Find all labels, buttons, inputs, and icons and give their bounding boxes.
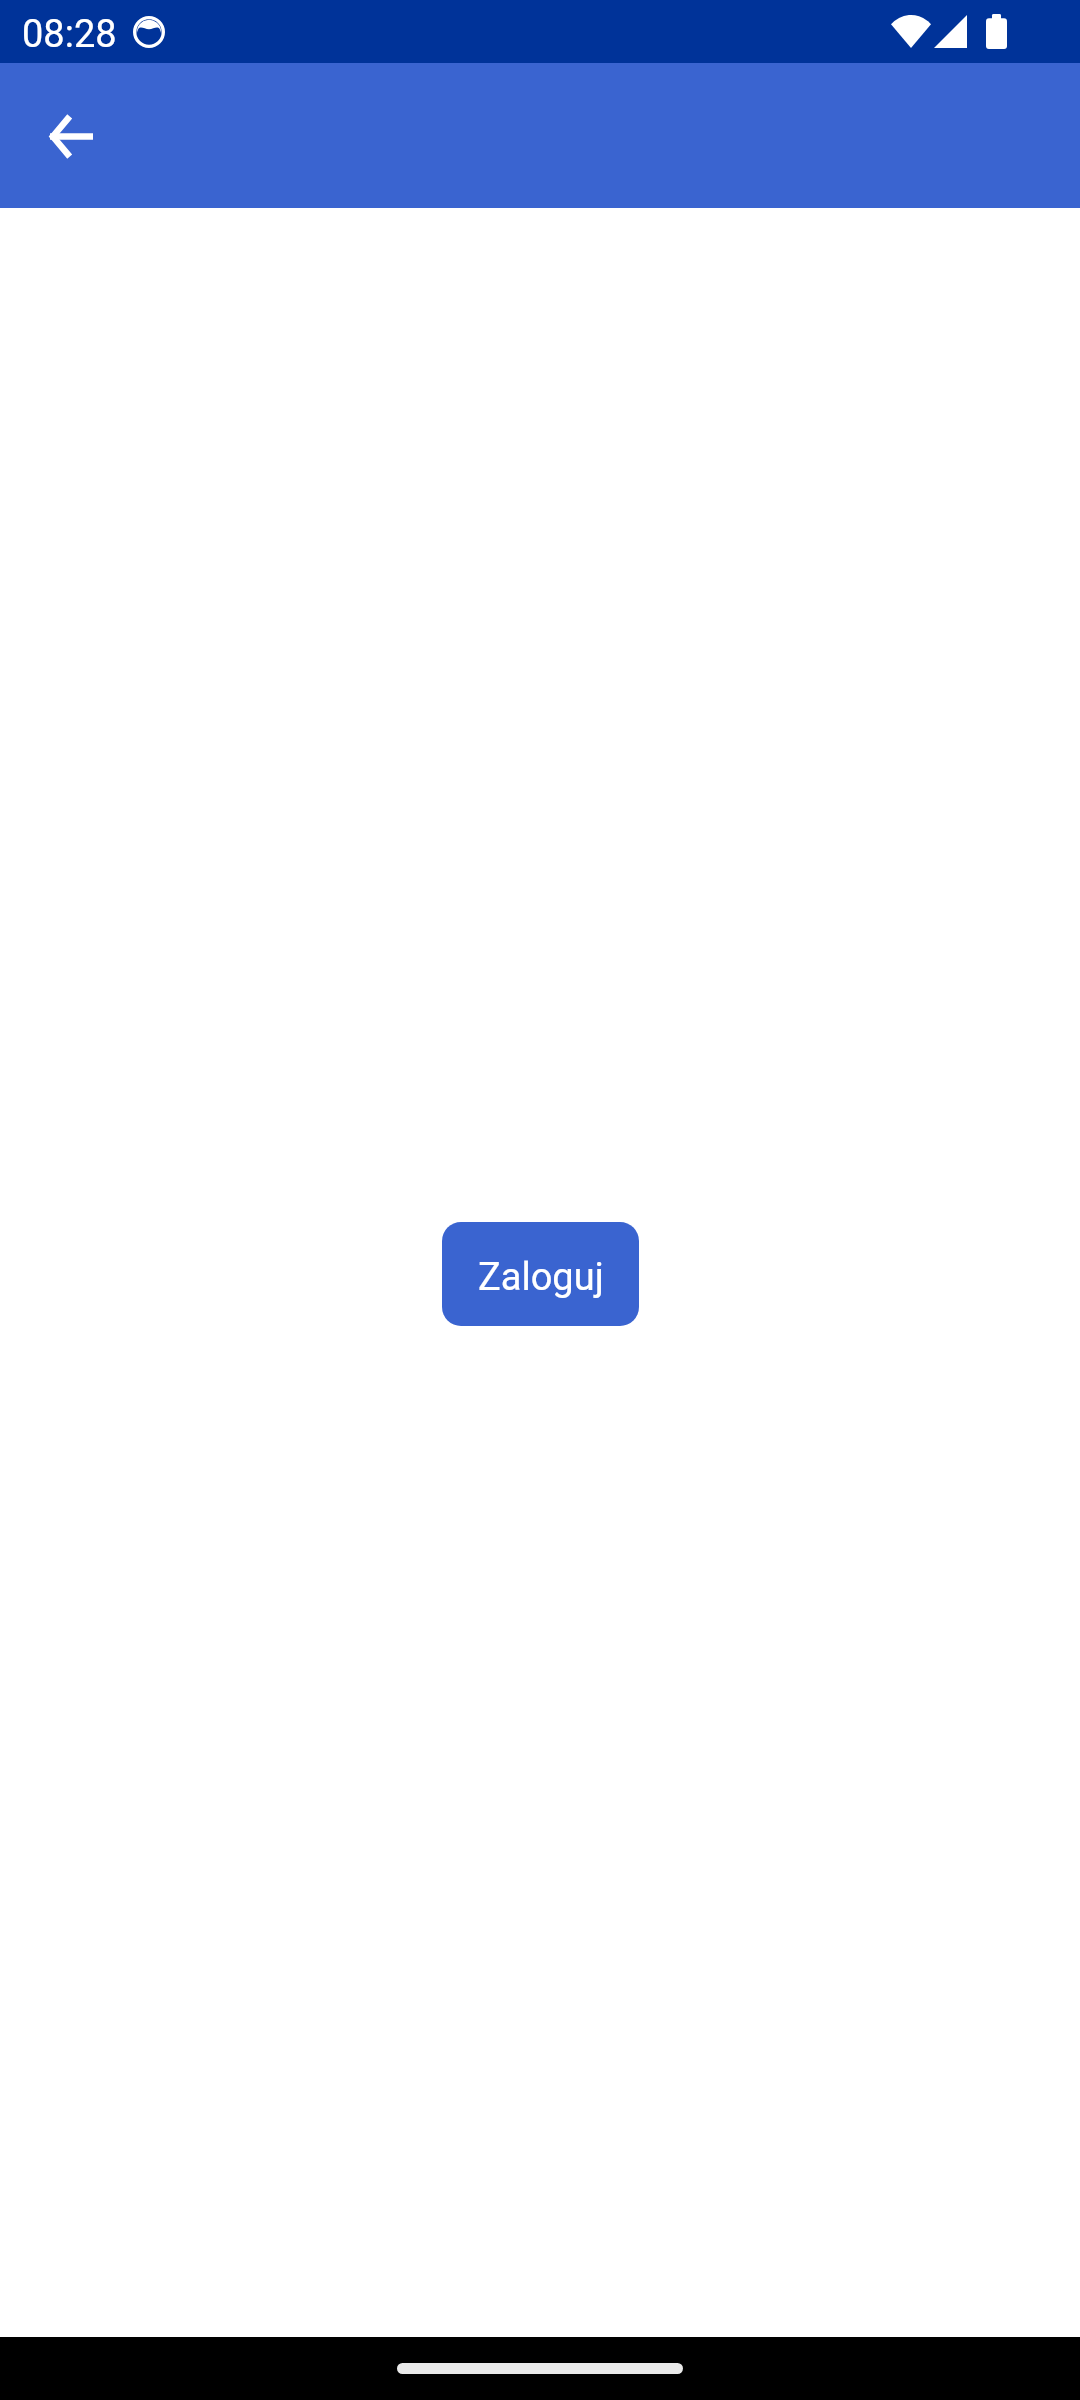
button[interactable]: Zaloguj [442,1222,639,1326]
staticText: 08:28 [22,12,117,57]
staticText: Zaloguj [478,1255,604,1300]
button[interactable]: Back [21,86,121,186]
